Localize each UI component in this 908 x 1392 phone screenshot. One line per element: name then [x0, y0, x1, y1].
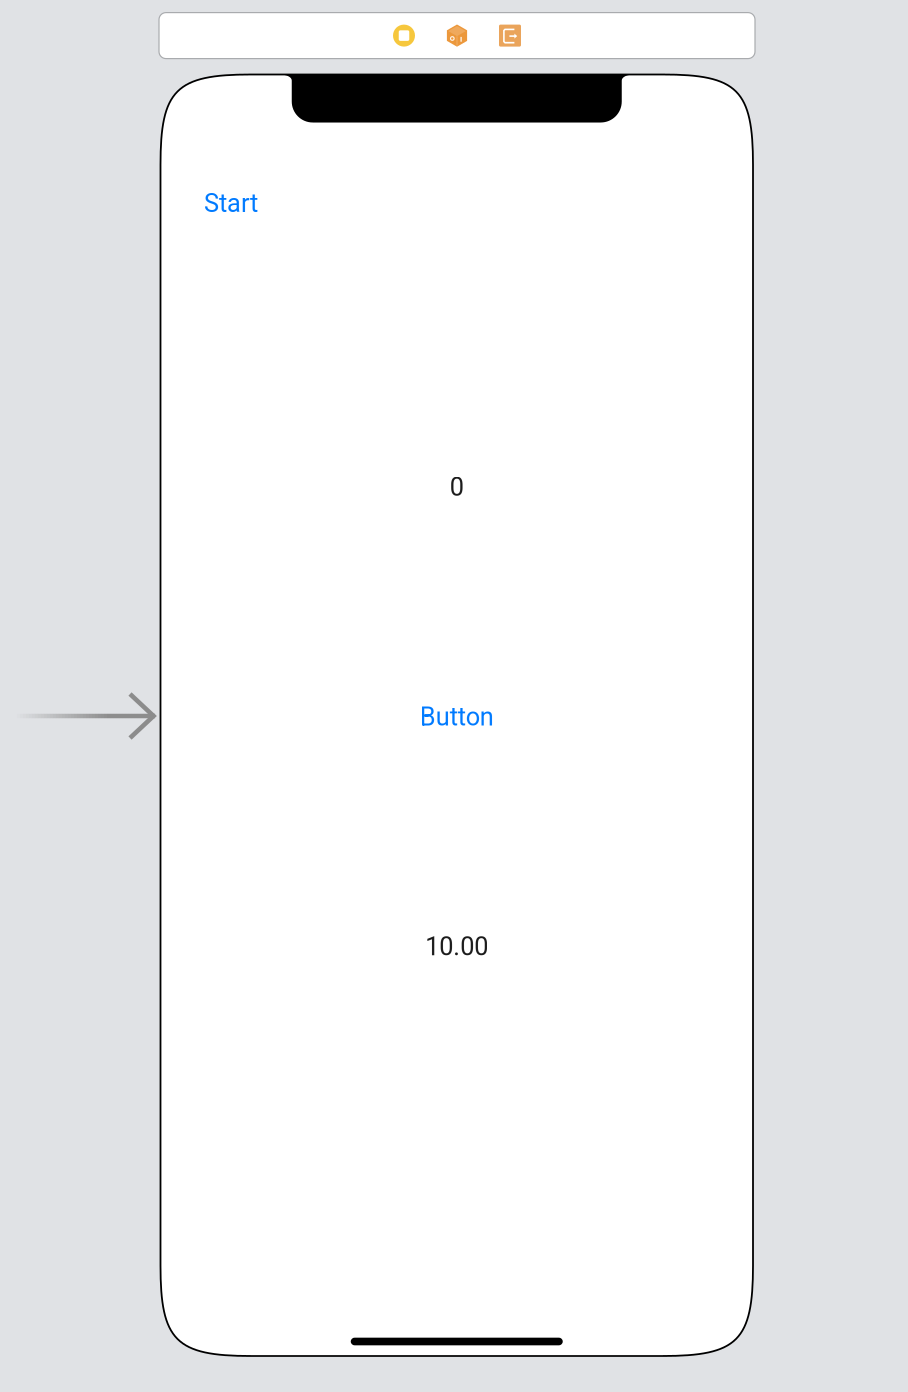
button[interactable]: Open preview in simulator — [483, 16, 536, 56]
button[interactable]: Stop preview — [377, 16, 430, 56]
staticText: 0 — [450, 472, 464, 502]
button[interactable]: Button — [420, 702, 494, 732]
staticText: Start — [204, 188, 258, 218]
button[interactable]: Preview variants — [430, 16, 483, 56]
button[interactable]: Start — [204, 188, 258, 218]
staticText: 10.00 — [425, 932, 488, 961]
staticText: Button — [420, 702, 494, 732]
